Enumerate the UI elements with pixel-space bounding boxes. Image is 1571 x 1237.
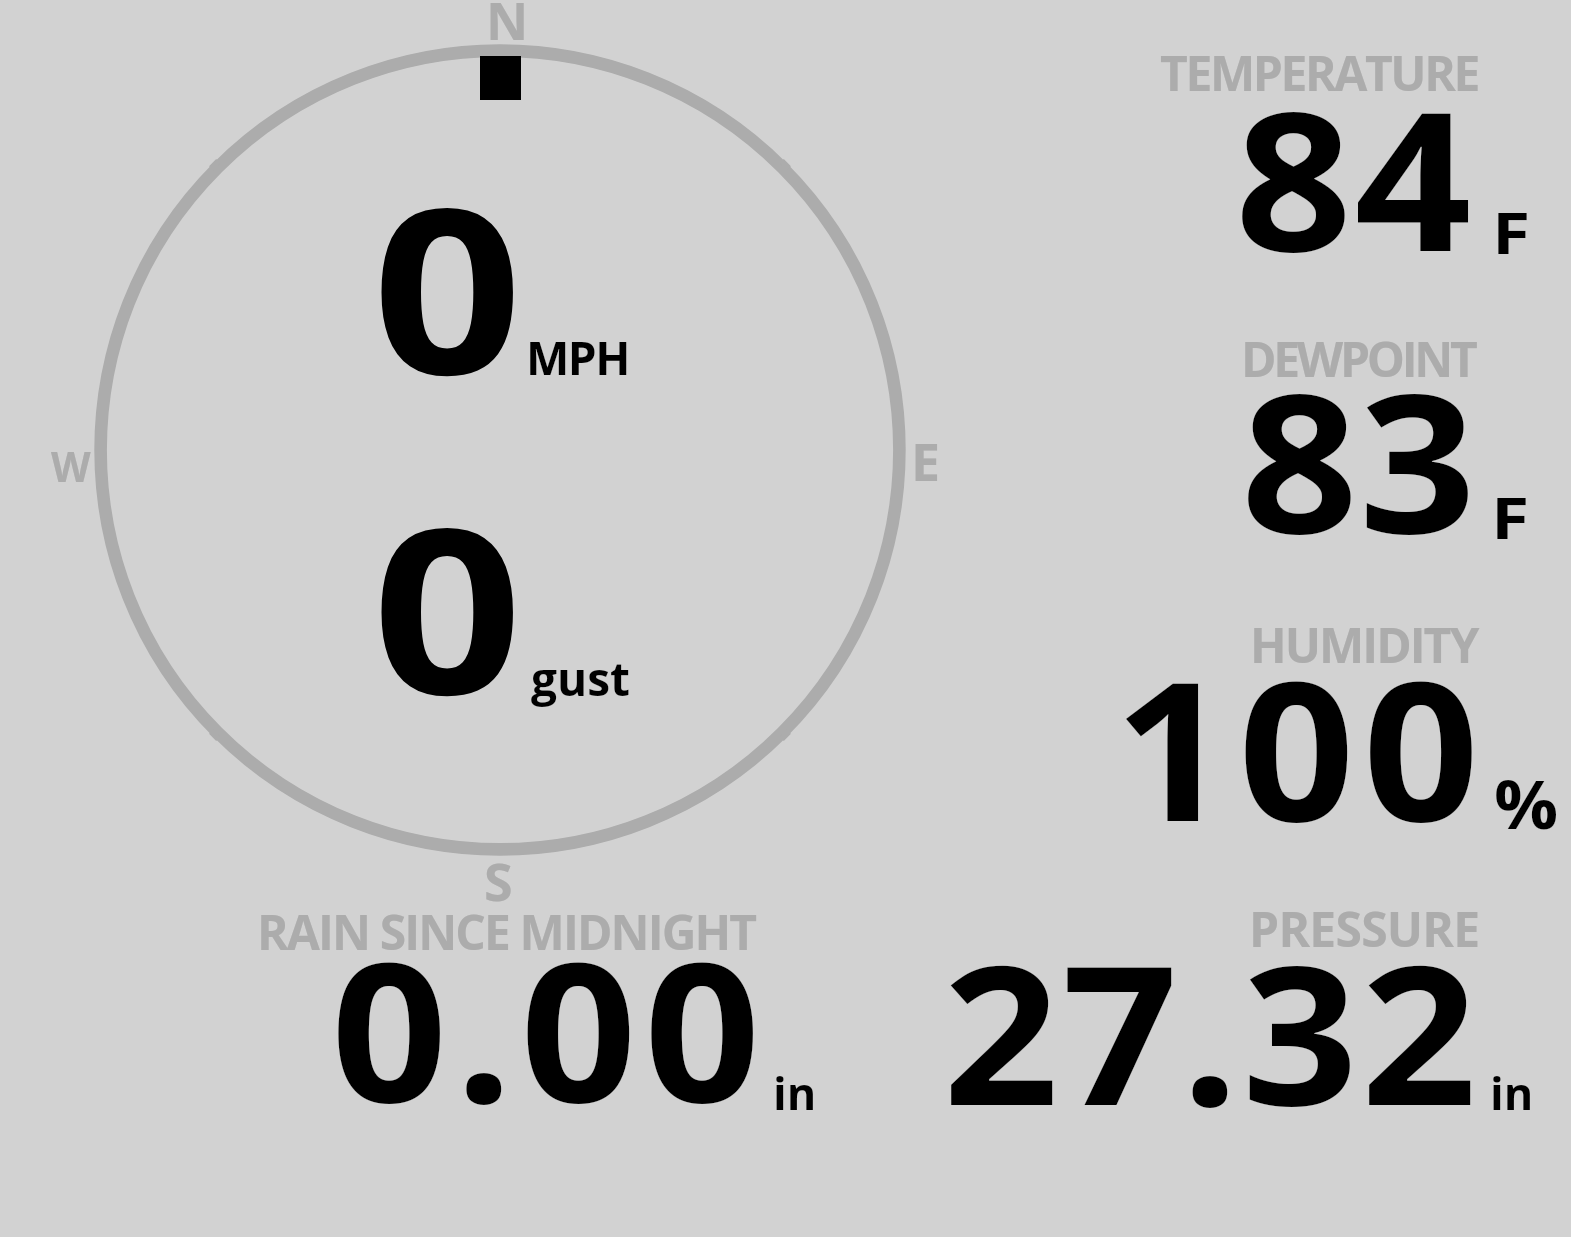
staticText: N xyxy=(486,0,529,55)
staticText: F xyxy=(1492,192,1530,271)
button[interactable]: Rain since midnight 0.00 in xyxy=(240,895,880,1125)
staticText: gust xyxy=(531,647,631,710)
staticText: 100 xyxy=(1114,615,1487,878)
button[interactable]: Temperature 84 F xyxy=(1000,40,1571,310)
button[interactable]: Humidity 100 percent xyxy=(1000,600,1571,860)
staticText: in xyxy=(773,1062,817,1123)
staticText: PRESSURE xyxy=(1249,896,1480,961)
staticText: 0 xyxy=(372,449,523,761)
staticText: W xyxy=(51,438,91,494)
button[interactable]: Pressure 27.32 in xyxy=(900,895,1571,1125)
button[interactable]: Wind speed and direction xyxy=(60,40,940,910)
staticText: in xyxy=(1490,1062,1534,1123)
staticText: 84 xyxy=(1235,45,1475,308)
staticText: HUMIDITY xyxy=(1250,612,1478,677)
staticText: 0 xyxy=(372,129,523,441)
staticText: RAIN SINCE MIDNIGHT xyxy=(257,899,756,964)
staticText: S xyxy=(484,845,513,916)
button[interactable]: Dewpoint 83 F xyxy=(1000,320,1571,580)
staticText: F xyxy=(1491,477,1529,556)
staticText: E xyxy=(911,425,941,496)
staticText: DEWPOINT xyxy=(1241,326,1475,391)
staticText: MPH xyxy=(526,326,629,389)
staticText: 27.32 xyxy=(943,899,1481,1162)
staticText: % xyxy=(1494,758,1559,848)
staticText: TEMPERATURE xyxy=(1160,40,1479,105)
staticText: 0.00 xyxy=(331,896,769,1159)
staticText: 83 xyxy=(1241,327,1477,590)
